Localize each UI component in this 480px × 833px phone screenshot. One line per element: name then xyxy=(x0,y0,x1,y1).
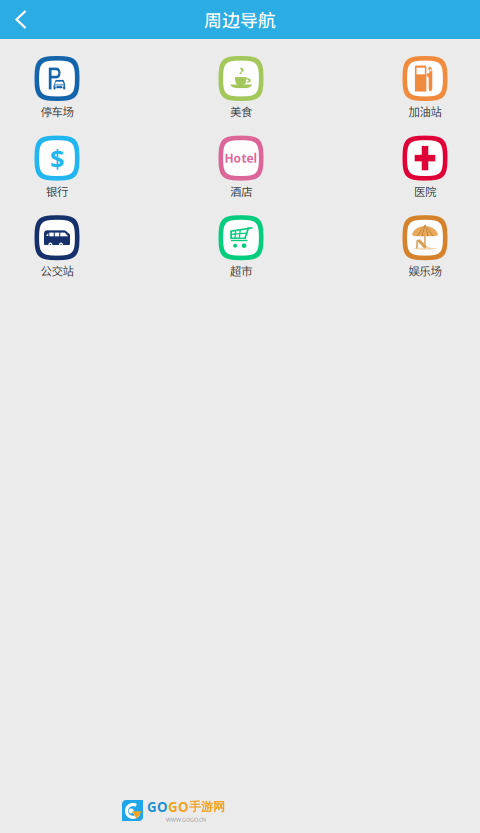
button[interactable]: 美食 xyxy=(205,56,277,120)
staticText: WWW.GOGO.CN xyxy=(166,816,206,823)
button[interactable]: 公交站 xyxy=(21,215,93,279)
staticText: 医院 xyxy=(414,183,436,199)
staticText: GO xyxy=(168,798,189,816)
button[interactable]: 娱乐场 xyxy=(389,215,461,279)
button[interactable]: Hotel xyxy=(205,136,277,199)
staticText: 周边导航 xyxy=(204,6,276,33)
staticText: GO xyxy=(147,798,168,816)
staticText: 娱乐场 xyxy=(408,262,441,279)
staticText: 超市 xyxy=(230,262,252,279)
staticText: 停车场 xyxy=(40,103,73,120)
button[interactable]: 超市 xyxy=(205,215,277,279)
staticText: 银行 xyxy=(46,183,68,199)
staticText: 酒店 xyxy=(230,183,252,199)
button[interactable]: 停车场 xyxy=(21,56,93,120)
staticText: 加油站 xyxy=(408,103,441,120)
button[interactable]: 医院 xyxy=(389,136,461,199)
staticText: $ xyxy=(50,141,64,175)
button[interactable]: 加油站 xyxy=(389,56,461,120)
button[interactable]: Back xyxy=(0,0,42,39)
staticText: 手游网 xyxy=(189,799,225,814)
staticText: 公交站 xyxy=(40,262,73,279)
staticText: Hotel xyxy=(224,150,257,166)
button[interactable]: $ xyxy=(21,136,93,199)
staticText: 美食 xyxy=(230,103,252,120)
